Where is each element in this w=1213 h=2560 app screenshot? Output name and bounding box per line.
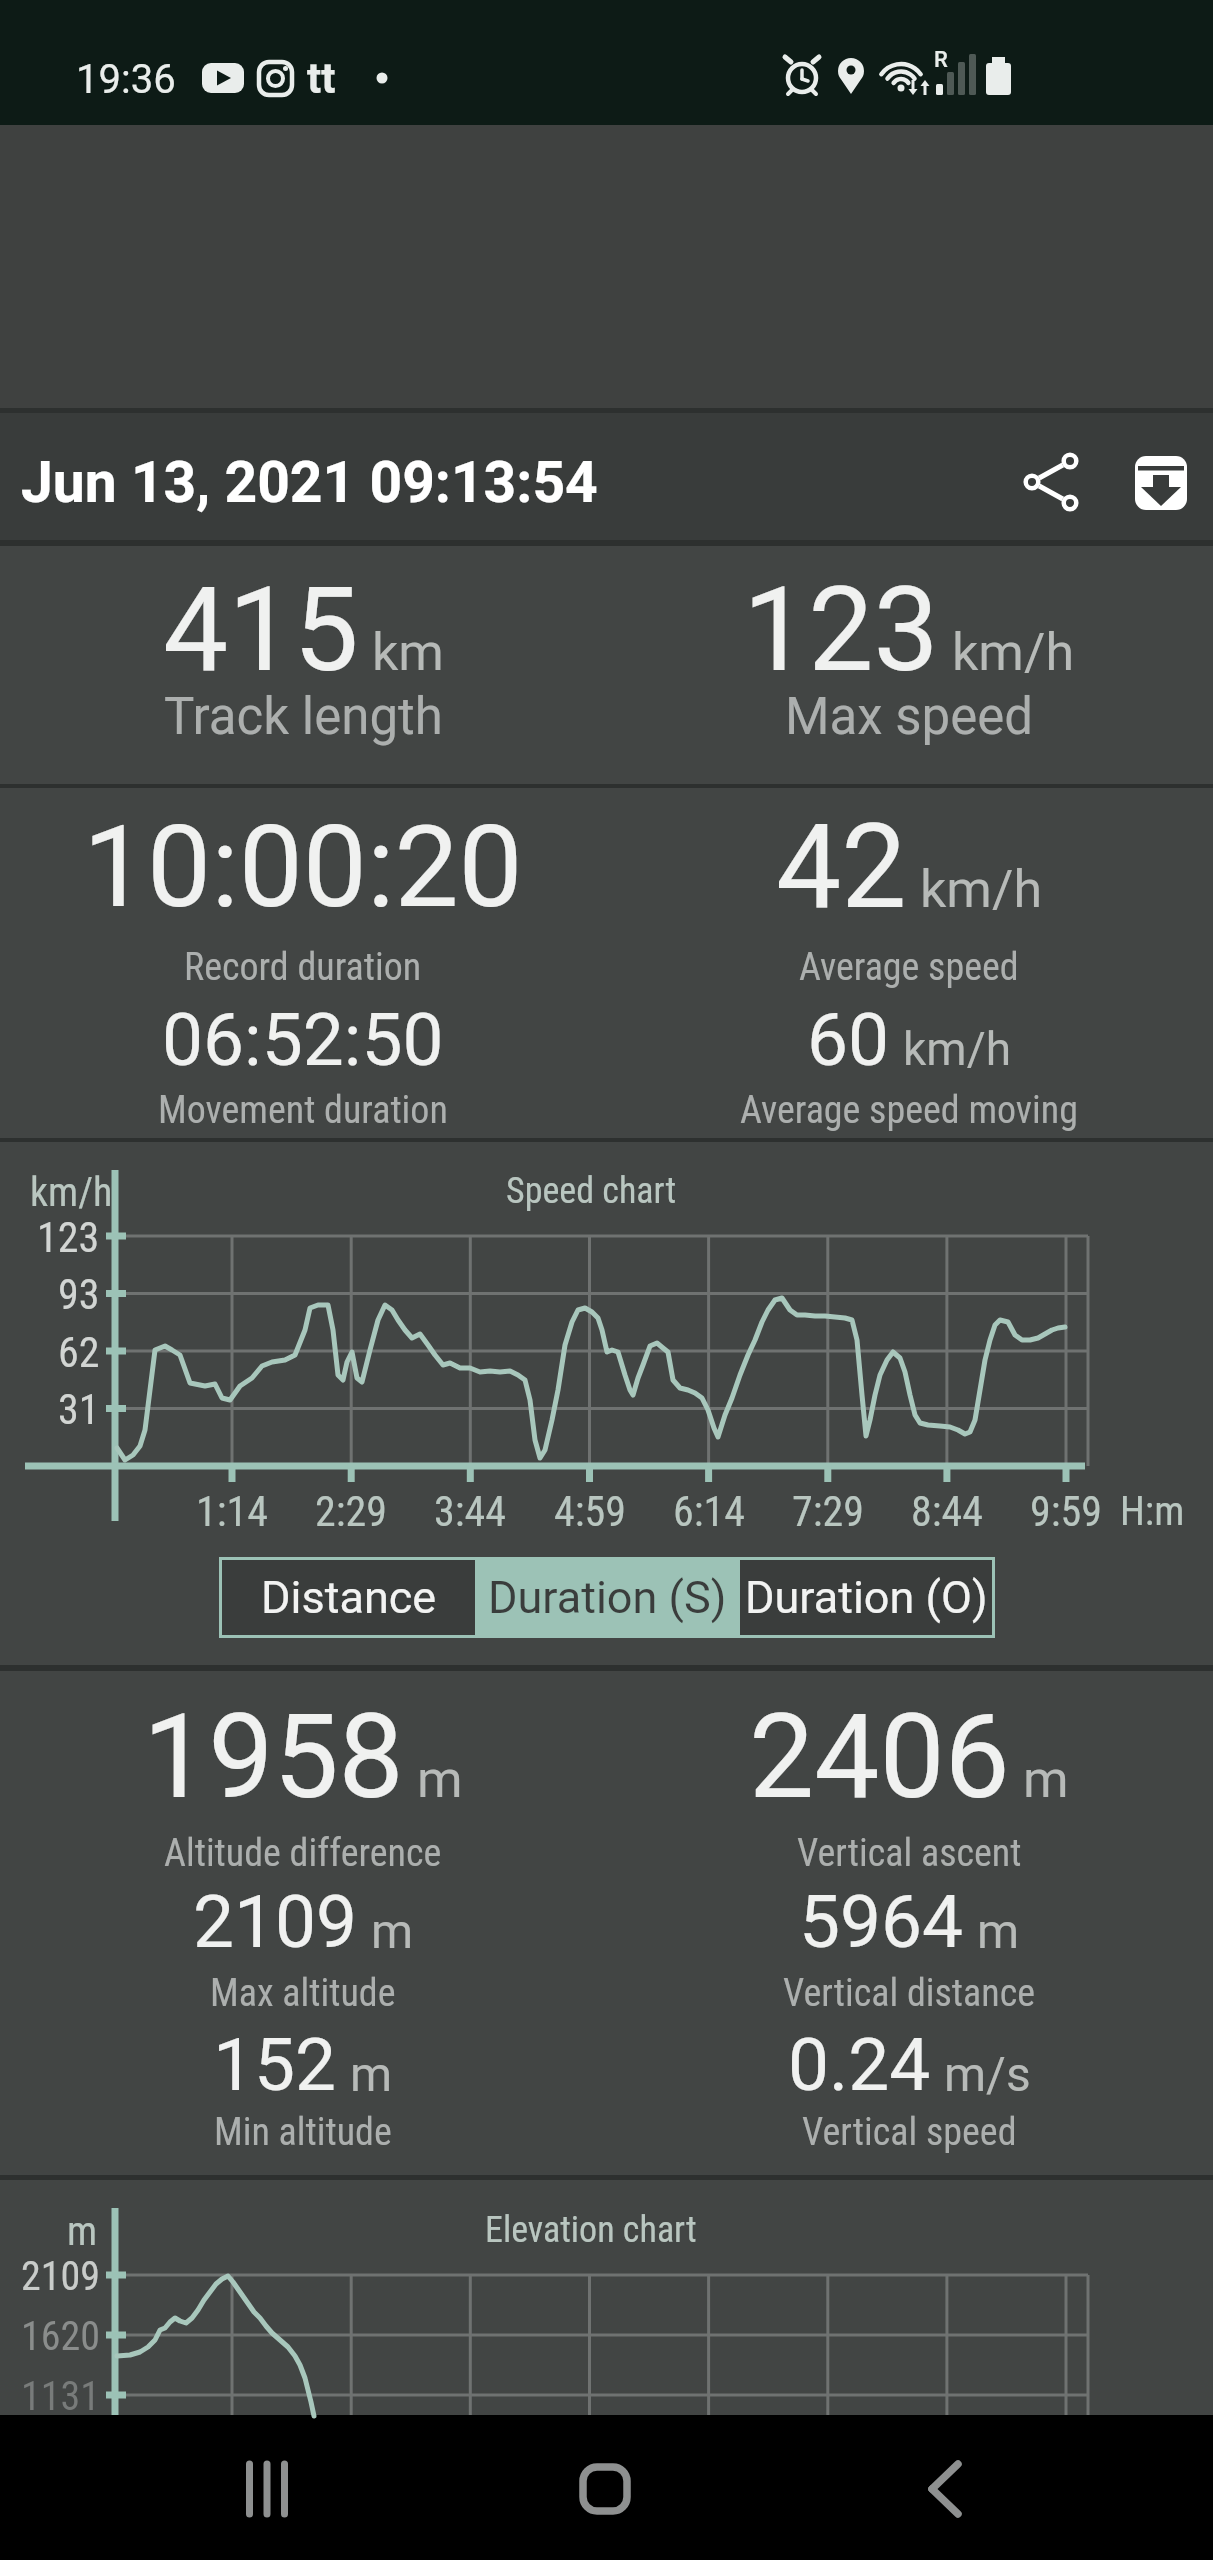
staticText: Jun 13, 2021 09:13:54 bbox=[21, 449, 598, 516]
staticText: Duration (O) bbox=[745, 1571, 988, 1624]
staticText: Max speed bbox=[785, 687, 1034, 747]
staticText: Elevation chart bbox=[485, 2209, 697, 2251]
staticText: km/h bbox=[952, 622, 1075, 683]
staticText: 152 bbox=[213, 2022, 337, 2108]
staticText: 3:44 bbox=[434, 1487, 507, 1536]
staticText: 1620 bbox=[21, 2313, 100, 2360]
staticText: m bbox=[1023, 1749, 1069, 1810]
staticText: R bbox=[934, 47, 948, 73]
button[interactable] bbox=[1135, 456, 1187, 510]
button[interactable] bbox=[903, 2447, 987, 2531]
staticText: Vertical ascent bbox=[797, 1831, 1022, 1876]
staticText: Speed chart bbox=[506, 1170, 677, 1212]
staticText: 123 bbox=[743, 562, 939, 698]
staticText: Average speed moving bbox=[740, 1088, 1078, 1133]
staticText: Duration (S) bbox=[488, 1571, 727, 1624]
staticText: 6:14 bbox=[673, 1487, 746, 1536]
staticText: 2109 bbox=[193, 1879, 358, 1965]
staticText: 0.24 bbox=[788, 2022, 931, 2108]
staticText: m/s bbox=[944, 2046, 1031, 2102]
staticText: 93 bbox=[58, 1270, 100, 1319]
staticText: H:m bbox=[1120, 1488, 1185, 1535]
staticText: 2109 bbox=[21, 2253, 100, 2300]
staticText: m bbox=[371, 1903, 414, 1959]
staticText: m bbox=[67, 2208, 98, 2255]
staticText: 10:00:20 bbox=[83, 800, 523, 934]
staticText: km/h bbox=[920, 859, 1043, 920]
staticText: 7:29 bbox=[792, 1487, 865, 1536]
staticText: km/h bbox=[30, 1169, 113, 1216]
staticText: 9:59 bbox=[1030, 1487, 1103, 1536]
button[interactable] bbox=[225, 2447, 309, 2531]
staticText: m bbox=[977, 1903, 1020, 1959]
staticText: km/h bbox=[903, 1022, 1011, 1076]
staticText: 42 bbox=[776, 799, 907, 935]
staticText: tt bbox=[307, 54, 336, 103]
staticText: 8:44 bbox=[911, 1487, 984, 1536]
staticText: 4:59 bbox=[554, 1487, 627, 1536]
staticText: 31 bbox=[58, 1385, 100, 1434]
button[interactable] bbox=[563, 2447, 647, 2531]
staticText: km bbox=[372, 622, 444, 683]
staticText: Track length bbox=[164, 687, 443, 747]
staticText: Vertical speed bbox=[802, 2110, 1017, 2155]
staticText: 1:14 bbox=[196, 1487, 269, 1536]
staticText: 123 bbox=[37, 1213, 100, 1262]
staticText: 1958 bbox=[143, 1689, 404, 1825]
button[interactable]: Duration (S) bbox=[478, 1560, 737, 1635]
button[interactable]: Distance bbox=[222, 1560, 475, 1635]
staticText: m bbox=[350, 2046, 393, 2102]
staticText: Max altitude bbox=[210, 1971, 396, 2016]
staticText: Record duration bbox=[184, 945, 422, 990]
staticText: Distance bbox=[261, 1571, 437, 1624]
staticText: 60 bbox=[807, 997, 890, 1083]
staticText: 19:36 bbox=[76, 56, 176, 103]
staticText: Min altitude bbox=[214, 2110, 392, 2155]
staticText: 06:52:50 bbox=[162, 997, 444, 1083]
staticText: 5964 bbox=[799, 1879, 964, 1965]
staticText: 2:29 bbox=[315, 1487, 388, 1536]
button[interactable] bbox=[1010, 440, 1094, 524]
button[interactable]: Duration (O) bbox=[740, 1560, 992, 1635]
staticText: Movement duration bbox=[158, 1088, 448, 1133]
staticText: Altitude difference bbox=[164, 1831, 442, 1876]
staticText: 415 bbox=[163, 562, 359, 698]
staticText: Average speed bbox=[799, 945, 1019, 990]
staticText: 1131 bbox=[21, 2373, 100, 2420]
staticText: 2406 bbox=[749, 1689, 1010, 1825]
staticText: 62 bbox=[58, 1328, 100, 1377]
staticText: m bbox=[417, 1749, 463, 1810]
staticText: Vertical distance bbox=[783, 1971, 1036, 2016]
